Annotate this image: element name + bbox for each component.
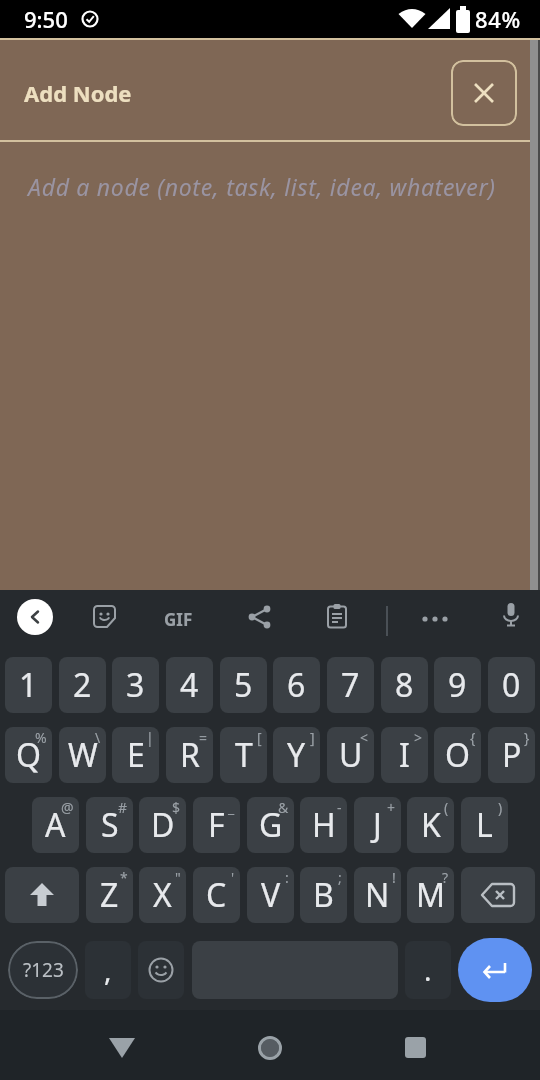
button[interactable]: K [407, 797, 454, 853]
button[interactable]: V [247, 867, 294, 923]
button[interactable]: Z [86, 867, 133, 923]
button[interactable]: U [327, 727, 374, 783]
staticText: % [35, 728, 47, 747]
staticText: $ [172, 798, 181, 817]
staticText: Y [287, 733, 306, 777]
button[interactable]: 2 [59, 657, 106, 713]
button[interactable]: A [32, 797, 79, 853]
staticText: ; [338, 868, 342, 887]
button[interactable] [5, 867, 79, 923]
button[interactable]: GIF [164, 608, 193, 631]
staticText: P [502, 733, 522, 777]
button[interactable]: ?123 [8, 941, 78, 999]
staticText: B [313, 873, 334, 917]
button[interactable]: T [220, 727, 267, 783]
staticText: Add Node [24, 78, 132, 108]
staticText: U [339, 733, 363, 777]
staticText: | [146, 728, 154, 747]
button[interactable]: F [193, 797, 240, 853]
button[interactable]: 1 [5, 657, 52, 713]
staticText: K [421, 803, 441, 847]
staticText: V [261, 873, 281, 917]
button[interactable]: E [112, 727, 159, 783]
staticText: L [476, 803, 493, 847]
staticText: + [387, 798, 396, 817]
staticText: , [104, 951, 112, 989]
button[interactable]: Y [273, 727, 320, 783]
button[interactable]: Q [5, 727, 52, 783]
button[interactable]: C [193, 867, 240, 923]
button[interactable]: 4 [166, 657, 213, 713]
button[interactable] [248, 605, 272, 629]
staticText: _ [228, 798, 235, 817]
button[interactable]: 3 [112, 657, 159, 713]
staticText: 5 [234, 663, 253, 707]
staticText: * [120, 868, 128, 887]
button[interactable] [404, 1037, 428, 1059]
staticText: ) [498, 798, 503, 817]
button[interactable]: X [139, 867, 186, 923]
staticText: 8 [395, 663, 414, 707]
staticText: Z [100, 873, 119, 917]
button[interactable]: P [488, 727, 535, 783]
button[interactable]: W [59, 727, 106, 783]
staticText: ' [231, 868, 235, 887]
button[interactable] [325, 604, 349, 628]
button[interactable] [498, 602, 524, 628]
staticText: 2 [73, 663, 92, 707]
button[interactable]: B [300, 867, 347, 923]
staticText: F [208, 803, 225, 847]
button[interactable] [92, 604, 118, 630]
button[interactable]: 8 [381, 657, 428, 713]
staticText: > [414, 728, 423, 747]
staticText: I [399, 733, 410, 777]
button[interactable]: L [461, 797, 508, 853]
staticText: : [285, 868, 289, 887]
button[interactable]: O [434, 727, 481, 783]
button[interactable]: 0 [488, 657, 535, 713]
button[interactable] [138, 941, 184, 999]
button[interactable]: 6 [273, 657, 320, 713]
staticText: Add a node (note, task, list, idea, what… [28, 171, 496, 202]
button[interactable] [461, 867, 535, 923]
staticText: W [68, 733, 98, 777]
button[interactable]: 9 [434, 657, 481, 713]
staticText: H [312, 803, 336, 847]
staticText: ] [310, 728, 315, 747]
button[interactable]: N [354, 867, 401, 923]
staticText: 9 [448, 663, 467, 707]
button[interactable]: D [139, 797, 186, 853]
staticText: M [416, 873, 446, 917]
button[interactable]: H [300, 797, 347, 853]
button[interactable]: , [85, 941, 131, 999]
button[interactable] [451, 60, 517, 126]
staticText: } [524, 728, 530, 747]
button[interactable]: G [247, 797, 294, 853]
staticText: ( [444, 798, 449, 817]
button[interactable]: M [407, 867, 454, 923]
button[interactable]: 5 [220, 657, 267, 713]
button[interactable]: 7 [327, 657, 374, 713]
button[interactable]: . [405, 941, 451, 999]
button[interactable] [257, 1035, 283, 1061]
button[interactable]: S [86, 797, 133, 853]
button[interactable] [458, 938, 532, 1002]
staticText: ?123 [23, 957, 64, 983]
staticText: T [235, 733, 253, 777]
button[interactable] [420, 604, 450, 634]
button[interactable]: I [381, 727, 428, 783]
staticText: { [470, 728, 476, 747]
staticText: C [206, 873, 227, 917]
staticText: ? [442, 868, 449, 887]
staticText: 3 [126, 663, 145, 707]
staticText: 0 [502, 663, 521, 707]
staticText: 7 [341, 663, 360, 707]
staticText: [ [257, 728, 262, 747]
button[interactable]: J [354, 797, 401, 853]
button[interactable] [108, 1036, 136, 1060]
button[interactable]: R [166, 727, 213, 783]
staticText: - [337, 798, 342, 817]
button[interactable] [17, 599, 53, 635]
staticText: D [151, 803, 175, 847]
